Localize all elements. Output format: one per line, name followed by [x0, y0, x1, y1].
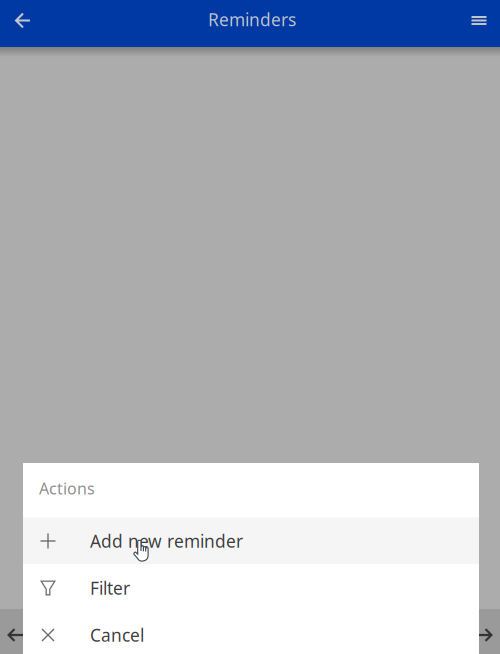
- staticText: Filter: [90, 576, 130, 599]
- button[interactable]: Forward: [467, 616, 500, 654]
- button[interactable]: Cancel: [23, 611, 479, 654]
- staticText: Actions: [39, 478, 95, 499]
- staticText: Cancel: [90, 623, 144, 646]
- button[interactable]: Back: [0, 616, 33, 654]
- button[interactable]: Filter: [23, 564, 479, 611]
- staticText: Reminders: [208, 8, 296, 31]
- button[interactable]: Back: [0, 0, 46, 41]
- button[interactable]: Menu: [458, 0, 500, 41]
- staticText: Add new reminder: [90, 529, 243, 552]
- button[interactable]: Add new reminder: [23, 517, 479, 564]
